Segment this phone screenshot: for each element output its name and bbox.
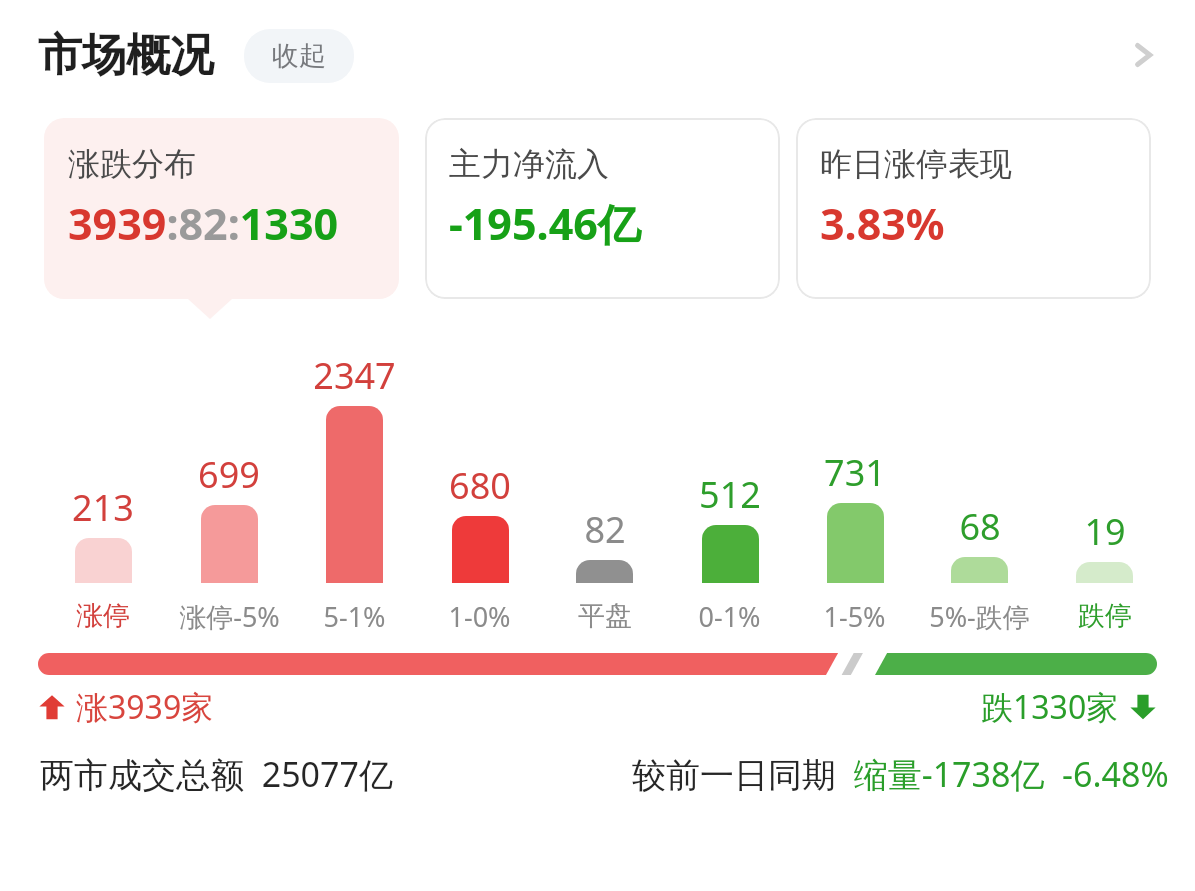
staticText: 68 [959,502,1001,551]
staticText: 跌1330家 [981,685,1119,729]
staticText: 0-1% [698,598,761,635]
staticText: 5%-跌停 [929,598,1030,635]
staticText: 昨日涨停表现 [820,144,1012,184]
staticText: 512 [699,470,761,519]
button[interactable]: 涨跌分布 [44,118,399,299]
staticText: 跌停 [1078,599,1132,633]
staticText: 3.83% [820,194,945,253]
staticText: 涨3939家 [76,685,214,729]
staticText: 收起 [272,39,326,73]
staticText: 1-0% [448,598,511,635]
staticText: 两市成交总额 25077亿 [40,751,393,797]
button[interactable]: More [1115,27,1171,83]
staticText: 2347 [313,351,396,400]
staticText: 5-1% [323,598,386,635]
staticText: 1-5% [823,598,886,635]
staticText: -195.46亿 [449,194,641,253]
staticText: 涨停 [76,599,130,633]
button[interactable]: 收起 [244,29,354,83]
staticText: 涨跌分布 [68,144,196,184]
staticText: 3939:82:1330 [68,194,339,253]
staticText: 主力净流入 [449,144,609,184]
staticText: 699 [198,450,260,499]
button[interactable]: 主力净流入 [425,118,780,299]
staticText: 213 [72,483,134,532]
button[interactable]: 昨日涨停表现 [796,118,1151,299]
staticText: 19 [1084,507,1126,556]
staticText: 731 [824,448,886,497]
staticText: 82 [584,505,626,554]
staticText: 涨停-5% [179,598,280,635]
staticText: 较前一日同期 缩量-1738亿 -6.48% [632,751,1169,797]
staticText: 市场概况 [38,28,214,83]
staticText: 680 [449,461,511,510]
staticText: 平盘 [578,599,632,633]
